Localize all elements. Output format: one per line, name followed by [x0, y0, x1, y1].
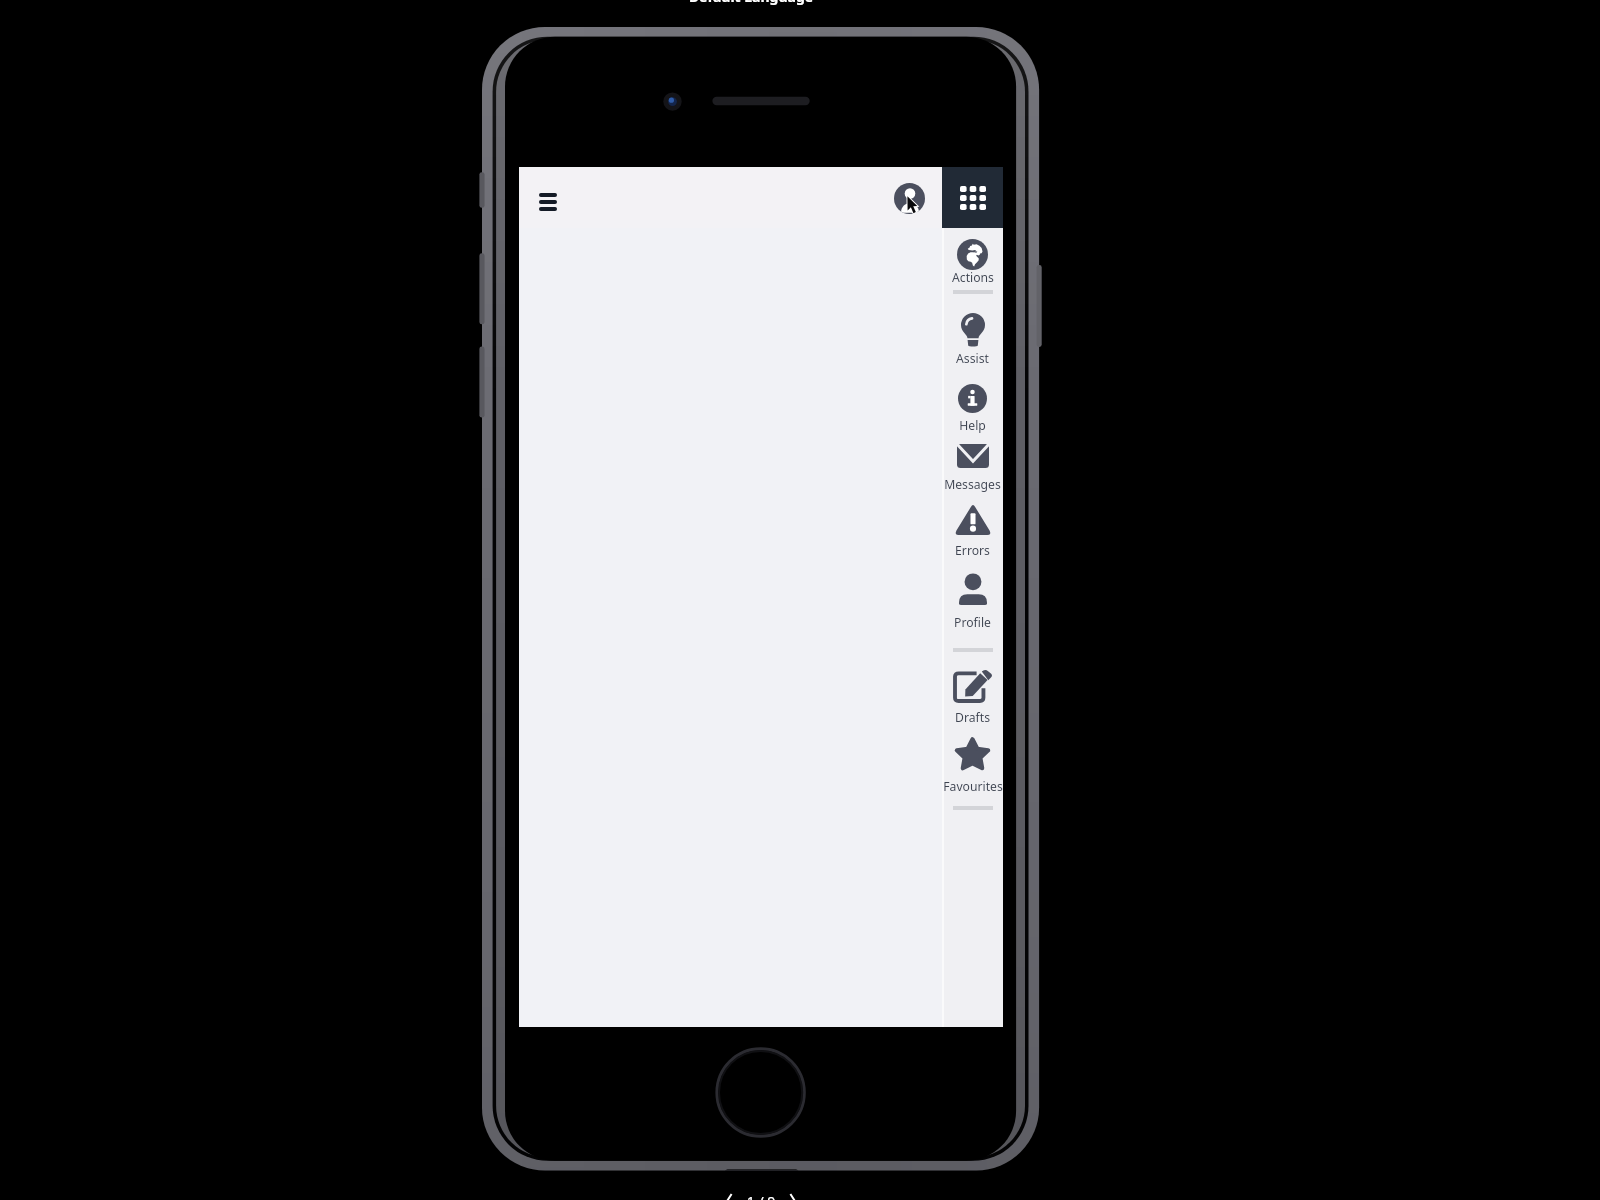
staticText: Errors: [955, 542, 990, 559]
button[interactable]: Next: [785, 1189, 803, 1200]
button[interactable]: Previous: [719, 1189, 737, 1200]
staticText: Messages: [944, 476, 1001, 493]
staticText: Actions: [952, 269, 994, 286]
button[interactable]: Help: [942, 378, 1003, 437]
button[interactable]: Apps grid: [942, 167, 1003, 228]
button[interactable]: Actions: [942, 233, 1003, 289]
button[interactable]: Profile: [942, 567, 1003, 634]
button[interactable]: Favourites: [942, 732, 1003, 798]
staticText: Profile: [954, 614, 991, 631]
button[interactable]: Account: [894, 183, 925, 214]
button[interactable]: Drafts: [942, 663, 1003, 729]
staticText: Help: [959, 417, 986, 434]
button[interactable]: Assist: [942, 307, 1003, 370]
staticText: Default Language: [641, 0, 861, 6]
staticText: 1 / 9: [701, 1192, 821, 1200]
button[interactable]: Messages: [942, 438, 1003, 496]
staticText: Drafts: [955, 709, 990, 726]
staticText: Favourites: [943, 778, 1003, 795]
button[interactable]: Errors: [942, 498, 1003, 562]
button[interactable]: Menu: [528, 182, 568, 222]
staticText: Assist: [956, 350, 989, 367]
